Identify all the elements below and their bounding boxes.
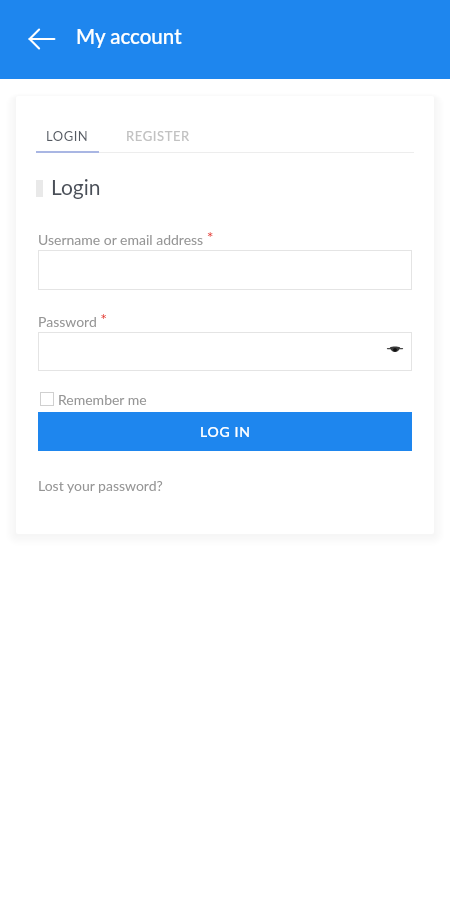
staticText: LOG IN — [200, 423, 251, 440]
button[interactable]: Lost your password? — [38, 477, 163, 494]
staticText: My account — [76, 24, 182, 49]
button[interactable]: LOG IN — [38, 412, 412, 451]
button[interactable]: Show password — [382, 336, 408, 362]
staticText: Password * — [38, 309, 108, 330]
staticText: LOGIN — [46, 128, 89, 144]
staticText: REGISTER — [126, 128, 190, 144]
staticText: Login — [51, 174, 101, 199]
button[interactable]: REGISTER — [126, 117, 190, 155]
button[interactable]: LOGIN — [46, 117, 89, 155]
button[interactable]: Username or email address — [38, 250, 412, 290]
button[interactable]: Remember me — [40, 391, 147, 407]
staticText: Username or email address * — [38, 227, 214, 248]
button[interactable]: Back — [22, 19, 62, 59]
button[interactable]: Password — [38, 332, 412, 371]
staticText: Remember me — [58, 391, 147, 407]
